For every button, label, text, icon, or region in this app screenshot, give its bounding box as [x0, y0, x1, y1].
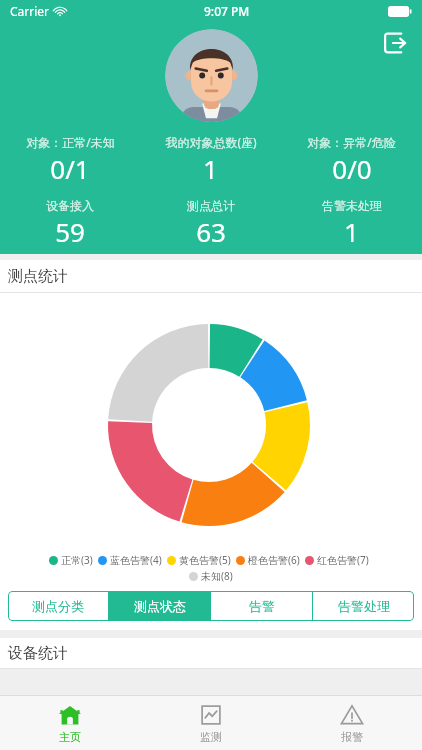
staticText: 告警处理: [338, 598, 390, 614]
button[interactable]: 告警未处理: [281, 198, 422, 249]
staticText: 红色告警(7): [317, 553, 369, 567]
button[interactable]: 未知(8): [189, 569, 233, 583]
staticText: 1: [203, 151, 218, 186]
staticText: 主页: [59, 730, 81, 744]
button[interactable]: 黄色告警(5): [167, 553, 231, 567]
staticText: 9:07 PM: [204, 3, 250, 19]
staticText: 未知(8): [201, 569, 233, 583]
staticText: 橙色告警(6): [248, 553, 300, 567]
staticText: 测点分类: [32, 598, 84, 614]
button[interactable]: 主页: [0, 696, 140, 750]
staticText: 报警: [341, 730, 363, 744]
staticText: 对象：异常/危险: [307, 134, 396, 150]
button[interactable]: 报警: [281, 696, 422, 750]
staticText: 1: [344, 214, 359, 249]
staticText: 设备统计: [8, 644, 68, 663]
button[interactable]: 测点总计: [140, 198, 281, 249]
staticText: 测点统计: [8, 267, 68, 286]
button[interactable]: 测点状态: [109, 591, 210, 621]
button[interactable]: 橙色告警(6): [236, 553, 300, 567]
button[interactable]: 监测: [140, 696, 281, 750]
button[interactable]: [165, 29, 258, 122]
staticText: 告警未处理: [322, 198, 382, 213]
button[interactable]: 设备接入: [0, 198, 140, 249]
button[interactable]: 测点分类: [8, 591, 108, 621]
button[interactable]: 正常(3): [49, 553, 93, 567]
staticText: 监测: [200, 730, 222, 744]
staticText: 63: [196, 214, 226, 249]
staticText: 0/0: [332, 151, 372, 186]
button[interactable]: 告警: [211, 591, 312, 621]
staticText: 测点总计: [187, 198, 235, 213]
button[interactable]: 对象：异常/危险: [281, 134, 422, 186]
staticText: 对象：正常/未知: [26, 134, 115, 150]
staticText: 设备接入: [46, 198, 94, 213]
button[interactable]: 告警处理: [313, 591, 414, 621]
staticText: 测点状态: [134, 598, 186, 614]
button[interactable]: Logout: [378, 26, 412, 60]
staticText: 正常(3): [61, 553, 93, 567]
staticText: 我的对象总数(座): [165, 134, 257, 150]
staticText: 59: [55, 214, 85, 249]
button[interactable]: 蓝色告警(4): [98, 553, 162, 567]
button[interactable]: 对象：正常/未知: [0, 134, 140, 186]
staticText: 蓝色告警(4): [110, 553, 162, 567]
button[interactable]: 红色告警(7): [305, 553, 369, 567]
button[interactable]: 我的对象总数(座): [140, 134, 281, 186]
staticText: 告警: [249, 598, 275, 614]
staticText: 黄色告警(5): [179, 553, 231, 567]
staticText: Carrier: [10, 3, 50, 19]
staticText: 0/1: [50, 151, 90, 186]
